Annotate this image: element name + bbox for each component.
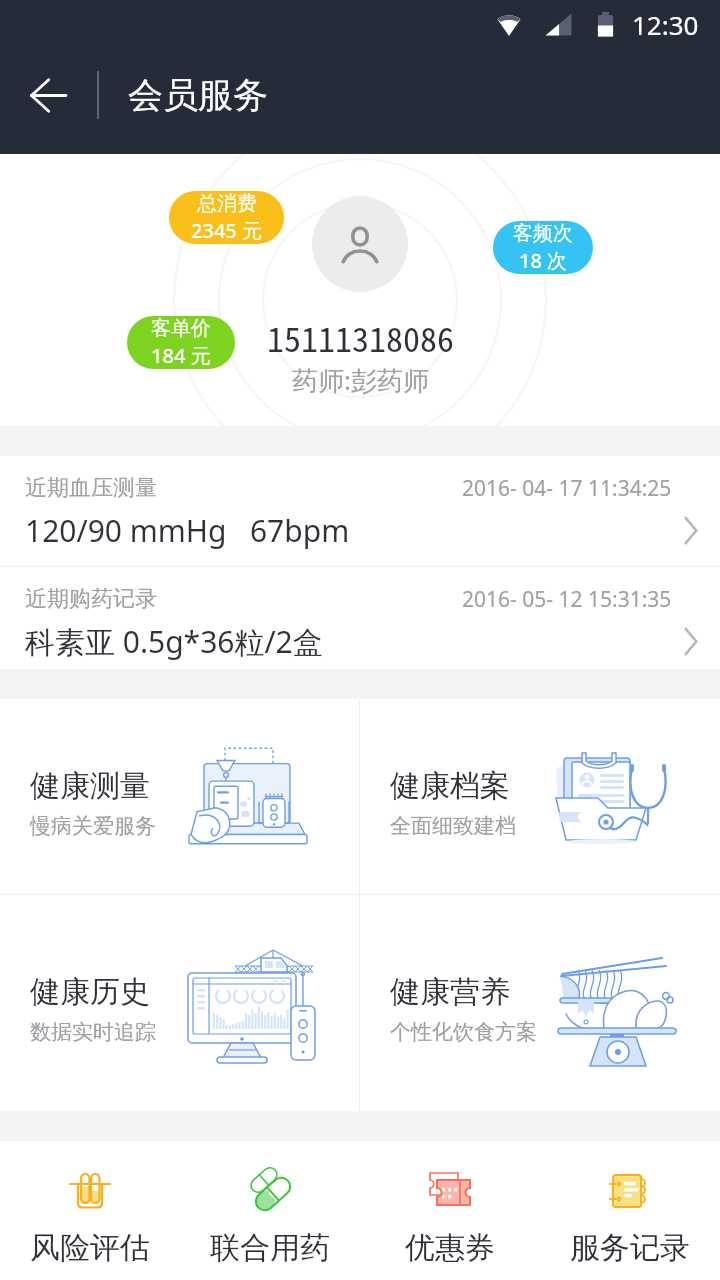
staticText: 科素亚 0.5g*36粒/2盒	[25, 621, 323, 662]
button[interactable]: 健康档案	[360, 699, 720, 894]
button[interactable]: 客频次	[493, 221, 593, 274]
staticText: 全面细致建档	[390, 813, 516, 839]
staticText: 健康档案	[390, 767, 510, 805]
staticText: 个性化饮食方案	[390, 1019, 537, 1045]
staticText: 总消费	[197, 191, 257, 216]
button[interactable]: User avatar	[312, 196, 408, 292]
staticText: 120/90 mmHg 67bpm	[25, 510, 350, 551]
button[interactable]: 优惠券	[360, 1141, 540, 1280]
staticText: 2016- 04- 17 11:34:25	[462, 474, 672, 503]
button[interactable]: 健康测量	[0, 699, 359, 894]
staticText: 15111318086	[267, 313, 454, 362]
staticText: 2016- 05- 12 15:31:35	[462, 585, 672, 614]
staticText: 风险评估	[30, 1229, 150, 1267]
staticText: 客单价	[151, 316, 211, 341]
staticText: 数据实时追踪	[30, 1019, 156, 1045]
button[interactable]: 总消费	[169, 191, 284, 244]
button[interactable]: 客单价	[127, 316, 235, 369]
staticText: 联合用药	[210, 1229, 330, 1267]
staticText: 优惠券	[405, 1229, 495, 1267]
button[interactable]: 联合用药	[180, 1141, 360, 1280]
staticText: 健康历史	[30, 973, 150, 1011]
staticText: 服务记录	[570, 1229, 690, 1267]
button[interactable]: 服务记录	[540, 1141, 720, 1280]
button[interactable]: 风险评估	[0, 1141, 180, 1280]
staticText: 药师:彭药师	[292, 362, 429, 398]
staticText: 18 次	[519, 247, 568, 274]
button[interactable]: 近期购药记录	[0, 567, 720, 669]
staticText: 会员服务	[128, 73, 268, 117]
staticText: 近期购药记录	[25, 585, 157, 613]
button[interactable]: 健康历史	[0, 895, 359, 1111]
staticText: 12:30	[632, 7, 699, 42]
staticText: 184 元	[151, 342, 211, 369]
staticText: 健康营养	[390, 973, 510, 1011]
staticText: 近期血压测量	[25, 474, 157, 502]
button[interactable]: Back	[0, 50, 92, 154]
button[interactable]: 健康营养	[360, 895, 720, 1111]
staticText: 客频次	[513, 221, 573, 246]
staticText: 慢病关爱服务	[30, 813, 156, 839]
button[interactable]: 近期血压测量	[0, 456, 720, 566]
staticText: 2345 元	[191, 217, 262, 244]
staticText: 健康测量	[30, 767, 150, 805]
